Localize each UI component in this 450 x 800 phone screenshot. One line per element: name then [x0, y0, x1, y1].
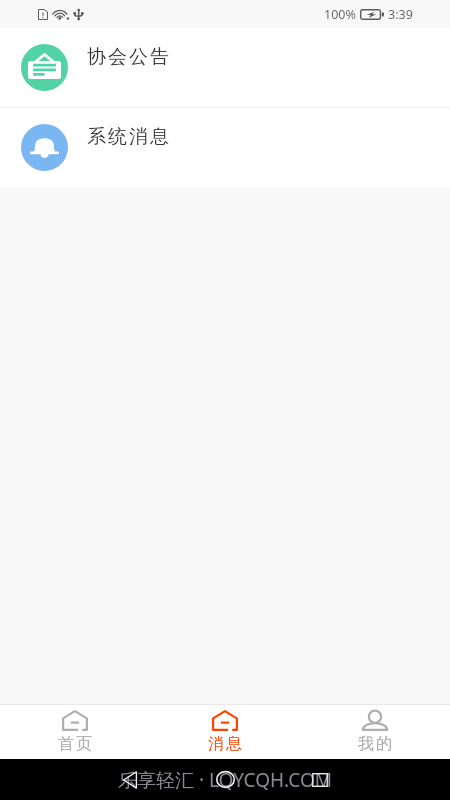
staticText: 首页	[57, 734, 93, 754]
staticText: 3:39	[388, 6, 413, 23]
staticText: 100%	[324, 6, 356, 23]
button[interactable]: 消息	[150, 705, 300, 759]
button[interactable]: Home	[205, 759, 245, 800]
staticText: 系统消息	[86, 125, 170, 149]
staticText: 消息	[207, 734, 243, 754]
button[interactable]: 协会公告	[0, 28, 450, 107]
button[interactable]: 系统消息	[0, 108, 450, 187]
staticText: 协会公告	[86, 45, 170, 69]
button[interactable]: Recents	[0, 759, 450, 800]
staticText: 我的	[357, 734, 393, 754]
button[interactable]: 首页	[0, 705, 150, 759]
staticText: 乐享轻汇 · LQYCQH.COM	[118, 767, 332, 793]
button[interactable]: 我的	[300, 705, 450, 759]
button[interactable]: Back	[0, 759, 450, 800]
